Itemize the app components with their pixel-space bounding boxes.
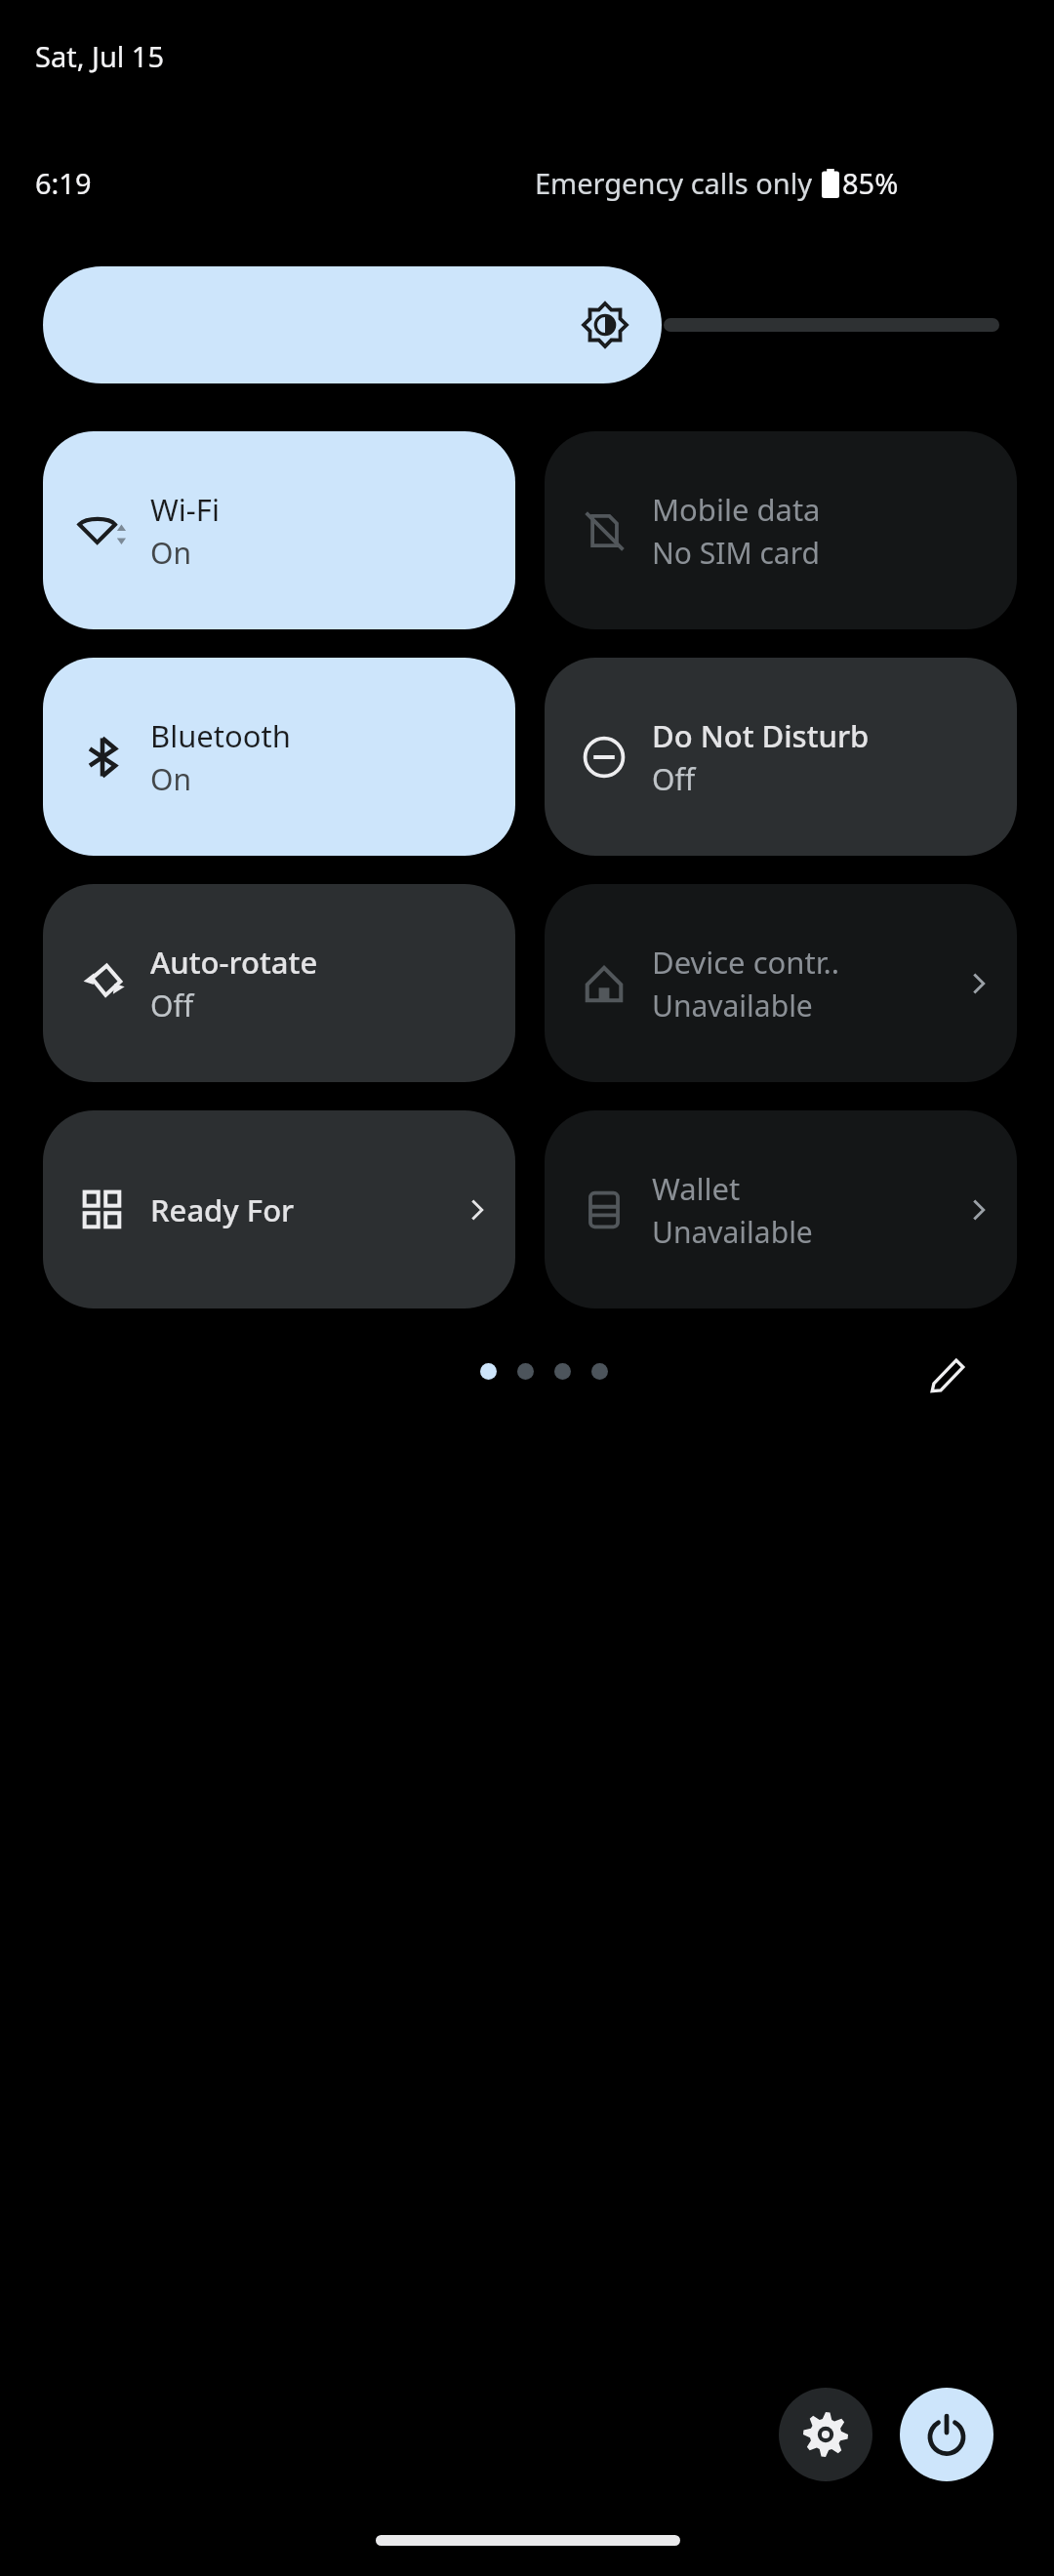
button[interactable]: Device contr..	[545, 884, 1017, 1082]
button[interactable]: Settings	[779, 2388, 872, 2481]
button[interactable]: Power	[900, 2388, 993, 2481]
button[interactable]: Ready For	[43, 1110, 515, 1308]
staticText: Off	[652, 759, 696, 799]
staticText: Wi-Fi	[150, 489, 220, 530]
button[interactable]: Do Not Disturb	[545, 658, 1017, 856]
button[interactable]: Page 4	[591, 1363, 608, 1380]
button[interactable]: Bluetooth	[43, 658, 515, 856]
staticText: Do Not Disturb	[652, 715, 870, 756]
staticText: Ready For	[150, 1189, 295, 1230]
button[interactable]: Page 3	[554, 1363, 571, 1380]
button[interactable]: Page 1	[480, 1363, 497, 1380]
staticText: Wallet	[652, 1168, 741, 1209]
staticText: Bluetooth	[150, 715, 291, 756]
staticText: 85%	[842, 164, 899, 202]
button[interactable]: Mobile data	[545, 431, 1017, 629]
staticText: No SIM card	[652, 533, 820, 573]
button[interactable]: Brightness	[43, 266, 1011, 383]
staticText: Device contr..	[652, 942, 840, 983]
staticText: Mobile data	[652, 489, 821, 530]
staticText: Off	[150, 986, 194, 1026]
button[interactable]: Edit tiles	[917, 1345, 978, 1405]
staticText: On	[150, 759, 191, 799]
staticText: On	[150, 533, 191, 573]
staticText: Unavailable	[652, 986, 813, 1026]
button[interactable]: Auto-rotate	[43, 884, 515, 1082]
button[interactable]: Page 2	[517, 1363, 534, 1380]
button[interactable]: Wi-Fi	[43, 431, 515, 629]
staticText: Auto-rotate	[150, 942, 318, 983]
staticText: 6:19	[35, 164, 92, 202]
staticText: Emergency calls only	[535, 164, 812, 202]
staticText: Unavailable	[652, 1212, 813, 1252]
staticText: Sat, Jul 15	[35, 37, 165, 75]
button[interactable]: Wallet	[545, 1110, 1017, 1308]
